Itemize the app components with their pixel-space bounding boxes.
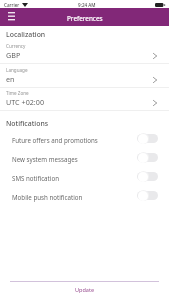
button[interactable]: Mobile push notification xyxy=(0,187,169,206)
staticText: Localization xyxy=(6,30,46,39)
button[interactable]: Update xyxy=(0,282,169,300)
staticText: Time Zone xyxy=(6,90,29,96)
staticText: Preferences xyxy=(67,14,103,23)
staticText: GBP xyxy=(6,50,21,60)
button[interactable]: Language xyxy=(0,64,169,88)
staticText: SMS notification xyxy=(12,174,59,182)
staticText: Language xyxy=(6,67,28,73)
staticText: Carrier xyxy=(4,2,20,8)
button[interactable]: New system messages xyxy=(0,149,169,168)
staticText: Update xyxy=(75,286,94,293)
button[interactable]: Open navigation menu xyxy=(0,8,22,26)
staticText: Future offers and promotions xyxy=(12,136,98,144)
button[interactable]: Currency xyxy=(0,40,169,64)
staticText: Currency xyxy=(6,43,26,49)
staticText: Mobile push notification xyxy=(12,193,83,201)
button[interactable]: Future offers and promotions xyxy=(0,130,169,149)
button[interactable]: Time Zone xyxy=(0,87,169,111)
staticText: en xyxy=(6,74,15,84)
staticText: UTC +02:00 xyxy=(6,97,45,107)
button[interactable]: SMS notification xyxy=(0,168,169,187)
staticText: New system messages xyxy=(12,155,78,163)
staticText: Notifications xyxy=(6,119,49,128)
staticText: 9:24 AM xyxy=(78,2,96,8)
